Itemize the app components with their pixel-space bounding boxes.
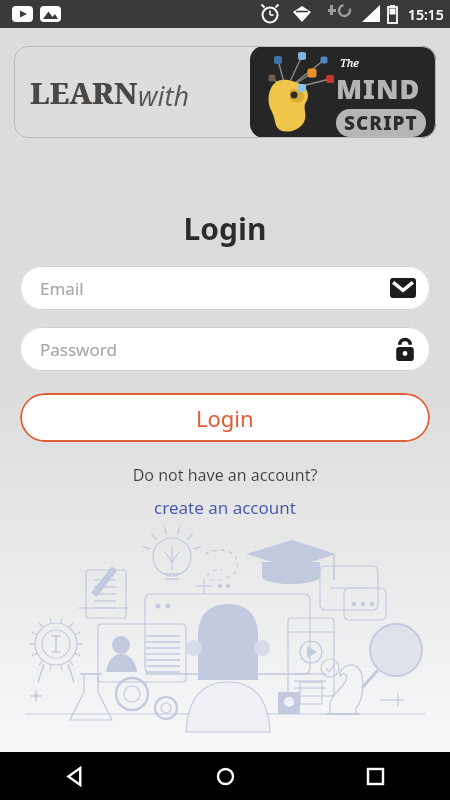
other: Email	[390, 278, 416, 298]
staticText: with	[138, 77, 190, 114]
staticText: MIND	[336, 70, 421, 107]
button[interactable]: Login	[20, 393, 430, 442]
staticText: The	[340, 55, 359, 70]
staticText: LEARN	[30, 73, 138, 112]
button[interactable]: Home	[150, 752, 300, 800]
other: Password	[394, 337, 416, 362]
button[interactable]: Back	[0, 752, 150, 800]
staticText: SCRIPT	[344, 110, 418, 136]
staticText: Password	[40, 338, 394, 361]
staticText: Do not have an account?	[0, 464, 450, 486]
staticText: 15:15	[408, 5, 444, 24]
button[interactable]: Recent apps	[300, 752, 450, 800]
staticText: Email	[40, 277, 390, 300]
button[interactable]: Email	[20, 266, 430, 310]
button[interactable]: Password	[20, 327, 430, 371]
button[interactable]: LEARN	[14, 46, 436, 138]
staticText: Login	[0, 208, 450, 249]
staticText: create an account	[154, 496, 296, 519]
button[interactable]: create an account	[148, 494, 302, 521]
staticText: Login	[196, 403, 254, 433]
